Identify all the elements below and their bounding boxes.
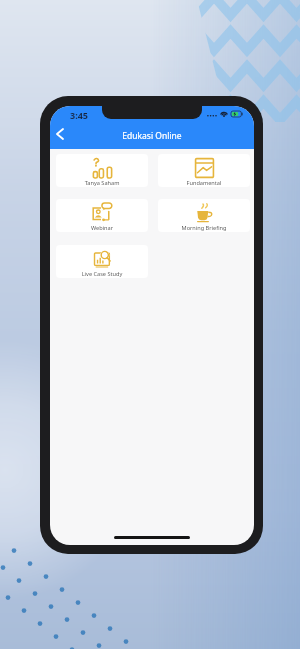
button[interactable]: Fundamental <box>158 154 250 187</box>
staticText: Fundamental <box>158 179 250 187</box>
staticText: Edukasi Online <box>50 130 254 142</box>
button[interactable]: Morning Briefing <box>158 199 250 232</box>
staticText: Morning Briefing <box>158 224 250 232</box>
staticText: Live Case Study <box>56 270 148 278</box>
button[interactable]: Webinar <box>56 199 148 232</box>
staticText: Webinar <box>56 224 148 232</box>
staticText: Tanya Saham <box>56 179 148 187</box>
button[interactable]: Live Case Study <box>56 245 148 278</box>
staticText: 3:45 <box>70 109 88 121</box>
button[interactable]: Tanya Saham <box>56 154 148 187</box>
button[interactable]: Back <box>50 123 71 145</box>
